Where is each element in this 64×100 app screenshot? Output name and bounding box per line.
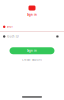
staticText: Touch ID — [7, 35, 19, 38]
button[interactable]: Create account — [22, 58, 42, 61]
staticText: Sign in — [27, 13, 37, 16]
staticText: Create account — [22, 58, 42, 61]
staticText: Error — [7, 25, 13, 28]
staticText: Sign in — [27, 49, 37, 52]
button[interactable]: Sign in — [9, 47, 54, 54]
